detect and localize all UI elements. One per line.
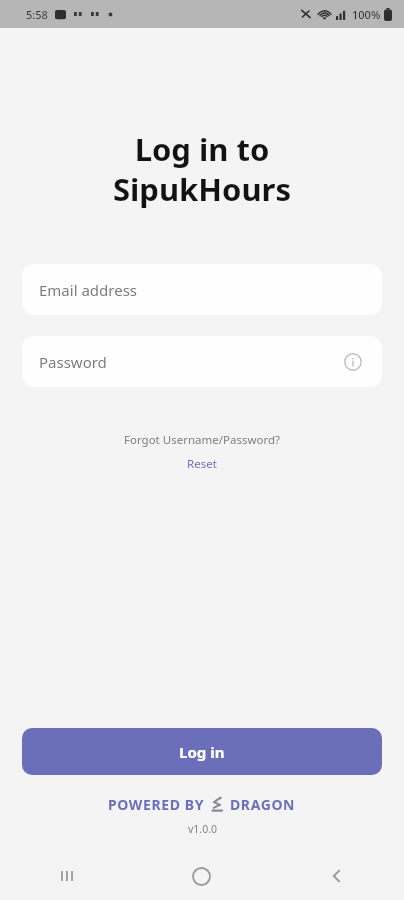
staticText: POWERED BY xyxy=(108,795,204,814)
button[interactable]: Reset xyxy=(181,455,223,473)
button[interactable]: Password info xyxy=(341,350,365,374)
button[interactable]: Log in xyxy=(22,728,382,775)
staticText: v1.0.0 xyxy=(188,822,217,836)
staticText: Email address xyxy=(39,280,138,300)
button[interactable]: Password xyxy=(22,336,382,387)
staticText: Log in xyxy=(179,742,225,762)
staticText: DRAGON xyxy=(230,795,296,814)
button[interactable]: Recents xyxy=(0,852,134,900)
staticText: Reset xyxy=(187,456,217,472)
staticText: 5:58 xyxy=(26,7,48,22)
staticText: 100% xyxy=(352,7,381,22)
staticText: Forgot Username/Password? xyxy=(124,432,280,448)
staticText: Log in to SipukHours xyxy=(113,128,291,210)
staticText: Password xyxy=(39,352,107,372)
button[interactable]: Home xyxy=(134,852,269,900)
button[interactable]: Email address xyxy=(22,264,382,315)
button[interactable]: Back xyxy=(269,852,404,900)
